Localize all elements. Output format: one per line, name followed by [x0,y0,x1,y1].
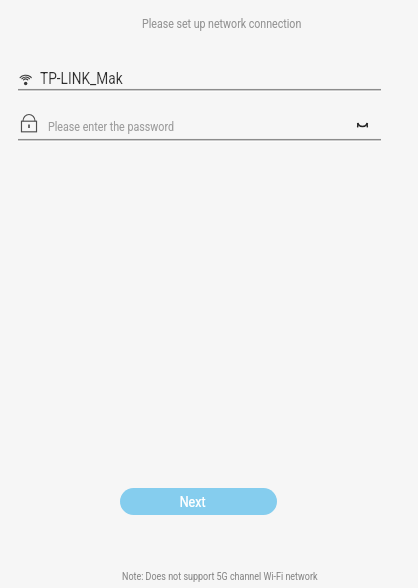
button[interactable]: Show password [351,112,373,134]
staticText: Next [180,493,206,511]
staticText: Please enter the password [48,119,174,134]
staticText: Note: Does not support 5G channel Wi-Fi … [122,570,318,583]
staticText: TP-LINK_Mak [40,69,123,88]
button[interactable]: Next [120,488,277,515]
button[interactable]: Please enter the password [48,111,351,135]
staticText: Please set up network connection [142,16,301,31]
button[interactable]: TP-LINK_Mak [18,66,381,90]
